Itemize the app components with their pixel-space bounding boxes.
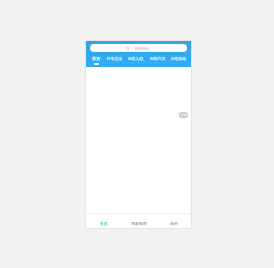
staticText: 日常生活 [107,56,123,61]
staticText: 创客内页 [150,56,166,61]
button[interactable]: 首页 [86,216,121,230]
button[interactable]: 首页 [92,56,101,65]
button[interactable]: 搜索商品 [90,44,187,52]
staticText: 创客入驻 [128,56,144,61]
button[interactable]: 商家制度 [121,216,156,230]
button[interactable]: 创客策略 [171,56,187,61]
staticText: 我的 [170,221,178,226]
staticText: 搜索商品 [135,46,150,51]
staticText: 首页 [100,221,108,226]
staticText: 首页 [92,56,101,61]
staticText: 客服 [181,113,187,117]
button[interactable]: Back to top [179,112,188,118]
button[interactable]: 我的 [156,216,191,230]
button[interactable]: 创客入驻 [128,56,144,61]
staticText: 商家制度 [131,221,147,226]
button[interactable]: 创客内页 [150,56,166,61]
button[interactable]: 日常生活 [107,56,123,61]
staticText: 创客策略 [171,56,187,61]
